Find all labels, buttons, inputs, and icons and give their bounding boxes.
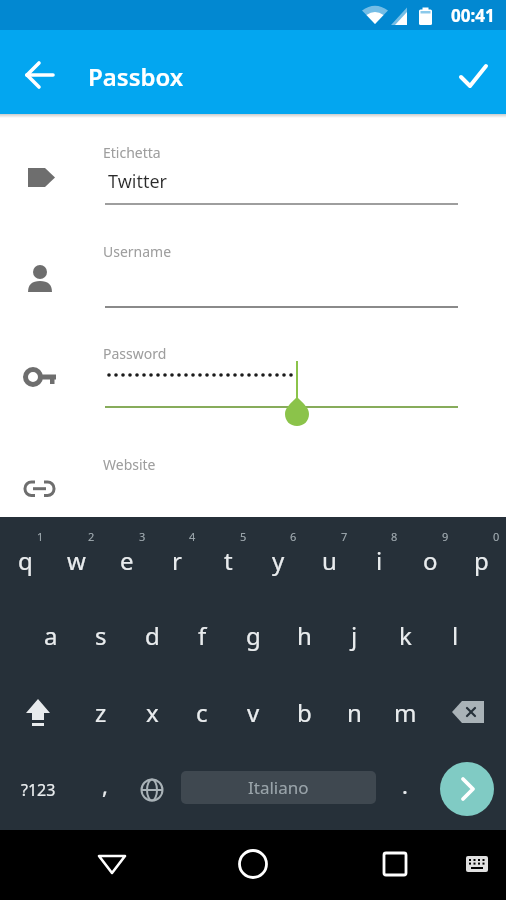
- staticText: 00:41: [451, 4, 495, 27]
- button[interactable]: p: [456, 532, 506, 588]
- staticText: .: [402, 770, 408, 800]
- staticText: Username: [103, 242, 172, 261]
- staticText: 6: [290, 529, 297, 544]
- staticText: d: [145, 619, 160, 652]
- staticText: m: [394, 696, 417, 729]
- button[interactable]: u: [304, 532, 354, 588]
- staticText: w: [67, 544, 86, 577]
- staticText: 1: [37, 529, 44, 544]
- button[interactable]: c: [177, 684, 227, 740]
- staticText: Website: [103, 455, 156, 474]
- staticText: j: [351, 619, 358, 652]
- staticText: t: [224, 544, 233, 577]
- button[interactable]: .: [375, 765, 435, 805]
- staticText: c: [196, 696, 208, 729]
- staticText: n: [347, 696, 362, 729]
- staticText: p: [474, 544, 489, 577]
- button[interactable]: q: [0, 532, 50, 588]
- button[interactable]: e: [102, 532, 152, 588]
- staticText: Italiano: [248, 776, 309, 799]
- staticText: x: [146, 696, 159, 729]
- staticText: v: [247, 696, 260, 729]
- button[interactable]: m: [380, 684, 430, 740]
- button[interactable]: [103, 338, 458, 410]
- staticText: Passbox: [88, 60, 184, 93]
- staticText: 0: [493, 529, 500, 544]
- button[interactable]: ,: [75, 765, 135, 805]
- button[interactable]: [430, 684, 506, 740]
- staticText: s: [95, 619, 107, 652]
- staticText: Password: [103, 344, 167, 363]
- staticText: Twitter: [108, 169, 168, 194]
- button[interactable]: [103, 236, 458, 308]
- button[interactable]: b: [279, 684, 329, 740]
- staticText: r: [172, 544, 182, 577]
- staticText: u: [322, 544, 337, 577]
- button[interactable]: x: [127, 684, 177, 740]
- button[interactable]: t: [203, 532, 253, 588]
- button[interactable]: [103, 449, 458, 509]
- staticText: i: [376, 544, 383, 577]
- staticText: 7: [341, 529, 348, 544]
- button[interactable]: d: [127, 607, 177, 663]
- staticText: 2: [88, 529, 95, 544]
- button[interactable]: f: [177, 607, 227, 663]
- button[interactable]: Italiano: [181, 771, 376, 804]
- button[interactable]: k: [380, 607, 430, 663]
- button[interactable]: [217, 830, 289, 900]
- staticText: q: [18, 544, 33, 577]
- button[interactable]: i: [354, 532, 404, 588]
- button[interactable]: g: [228, 607, 278, 663]
- button[interactable]: w: [51, 532, 101, 588]
- staticText: 8: [391, 529, 398, 544]
- button[interactable]: a: [26, 607, 76, 663]
- button[interactable]: [16, 51, 64, 99]
- staticText: 3: [139, 529, 146, 544]
- button[interactable]: z: [76, 684, 126, 740]
- button[interactable]: n: [329, 684, 379, 740]
- button[interactable]: [103, 136, 458, 206]
- staticText: e: [120, 544, 134, 577]
- button[interactable]: r: [152, 532, 202, 588]
- staticText: k: [399, 619, 412, 652]
- button[interactable]: h: [279, 607, 329, 663]
- staticText: h: [297, 619, 312, 652]
- button[interactable]: o: [405, 532, 455, 588]
- staticText: a: [44, 619, 58, 652]
- staticText: f: [198, 619, 207, 652]
- button[interactable]: j: [329, 607, 379, 663]
- button[interactable]: [449, 52, 495, 98]
- button[interactable]: [440, 762, 494, 816]
- staticText: b: [297, 696, 312, 729]
- button[interactable]: s: [76, 607, 126, 663]
- button[interactable]: y: [253, 532, 303, 588]
- staticText: ,: [102, 770, 108, 800]
- staticText: ?123: [21, 779, 56, 801]
- button[interactable]: [76, 830, 148, 900]
- button[interactable]: [359, 830, 431, 900]
- staticText: Etichetta: [103, 143, 161, 162]
- button[interactable]: v: [228, 684, 278, 740]
- staticText: 4: [189, 529, 196, 544]
- staticText: z: [95, 696, 107, 729]
- button[interactable]: [455, 850, 499, 880]
- staticText: 5: [240, 529, 247, 544]
- button[interactable]: ?123: [8, 770, 68, 810]
- staticText: g: [246, 619, 261, 652]
- button[interactable]: [0, 684, 76, 740]
- button[interactable]: [127, 765, 177, 815]
- staticText: o: [423, 544, 438, 577]
- staticText: 9: [442, 529, 449, 544]
- staticText: l: [452, 619, 459, 652]
- staticText: y: [272, 544, 285, 577]
- button[interactable]: l: [430, 607, 480, 663]
